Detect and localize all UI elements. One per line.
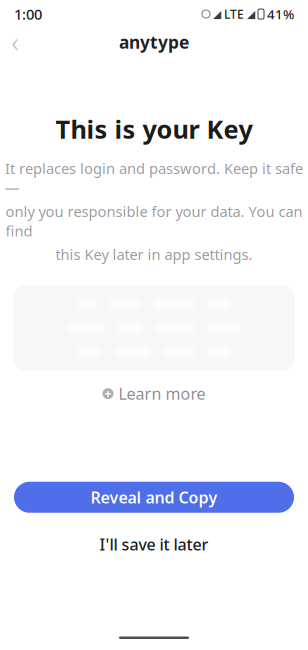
staticText: I'll save it later bbox=[99, 534, 208, 555]
button[interactable]: Reveal and Copy bbox=[14, 482, 294, 513]
staticText: It replaces login and password. Keep it … bbox=[5, 159, 303, 198]
button[interactable]: + bbox=[94, 379, 213, 408]
button[interactable]: I'll save it later bbox=[79, 526, 228, 563]
staticText: ‹ bbox=[11, 24, 18, 60]
staticText: Reveal and Copy bbox=[90, 487, 217, 508]
staticText: only you responsible for your data. You … bbox=[5, 202, 302, 241]
staticText: Learn more bbox=[118, 383, 205, 404]
staticText: + bbox=[104, 386, 111, 402]
staticText: anytype bbox=[119, 30, 189, 53]
staticText: this Key later in app settings. bbox=[55, 245, 252, 264]
staticText: 41% bbox=[267, 5, 294, 23]
staticText: ◢ bbox=[247, 8, 255, 20]
button[interactable]: Back bbox=[0, 28, 30, 56]
staticText: LTE bbox=[224, 6, 244, 22]
staticText: This is your Key bbox=[55, 112, 252, 146]
staticText: ◢ bbox=[213, 8, 221, 20]
staticText: 1:00 bbox=[14, 4, 42, 24]
